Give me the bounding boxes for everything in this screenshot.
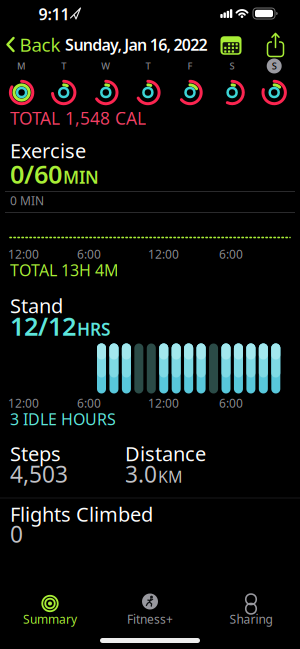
staticText: Sharing	[229, 611, 272, 627]
staticText: S	[272, 60, 277, 72]
button[interactable]: Back	[2, 29, 66, 59]
staticText: 4,503	[10, 459, 68, 489]
staticText: T	[61, 60, 66, 72]
staticText: 0 MIN	[10, 192, 44, 208]
staticText: TOTAL 13H 4M	[10, 259, 119, 281]
staticText: Summary	[23, 611, 77, 627]
staticText: Steps	[10, 440, 61, 467]
staticText: Exercise	[10, 137, 86, 164]
staticText: 6:00	[219, 395, 243, 411]
staticText: M	[17, 60, 26, 72]
staticText: Distance	[125, 440, 206, 467]
button[interactable]: Sunday	[254, 56, 294, 112]
button[interactable]: Share	[260, 29, 290, 59]
staticText: HRS	[77, 318, 111, 341]
button[interactable]: Wednesday	[86, 56, 126, 112]
button[interactable]: Fitness+	[105, 585, 195, 633]
staticText: 12/12	[10, 309, 76, 343]
staticText: Fitness+	[127, 611, 173, 627]
staticText: Sunday, Jan 16, 2022	[65, 34, 208, 55]
staticText: Back	[19, 32, 60, 57]
staticText: Stand	[10, 292, 63, 319]
staticText: 9:11	[38, 3, 69, 25]
staticText: S	[230, 60, 235, 72]
staticText: 12:00	[148, 395, 179, 411]
staticText: W	[101, 60, 110, 72]
staticText: 0/60	[10, 157, 62, 191]
staticText: Flights Climbed	[10, 501, 153, 527]
staticText: 0	[10, 519, 23, 549]
staticText: TOTAL 1,548 CAL	[10, 106, 146, 129]
staticText: 12:00	[8, 246, 39, 262]
staticText: 12:00	[8, 395, 39, 411]
staticText: 6:00	[219, 246, 243, 262]
button[interactable]: Tuesday	[44, 56, 84, 112]
staticText: 12:00	[148, 246, 179, 262]
button[interactable]: Choose date	[216, 30, 246, 60]
staticText: F	[187, 60, 192, 72]
button[interactable]: Sharing	[206, 585, 296, 633]
button[interactable]: Summary	[5, 585, 95, 633]
staticText: KM	[158, 466, 183, 487]
button[interactable]: Friday	[170, 56, 210, 112]
button[interactable]: Monday	[2, 56, 42, 112]
staticText: MIN	[63, 166, 99, 189]
button[interactable]: Saturday	[212, 56, 252, 112]
button[interactable]: Thursday	[128, 56, 168, 112]
staticText: 6:00	[77, 395, 101, 411]
staticText: T	[145, 60, 150, 72]
staticText: 3.0	[125, 459, 157, 489]
staticText: 3 IDLE HOURS	[10, 408, 116, 430]
staticText: 6:00	[77, 246, 101, 262]
